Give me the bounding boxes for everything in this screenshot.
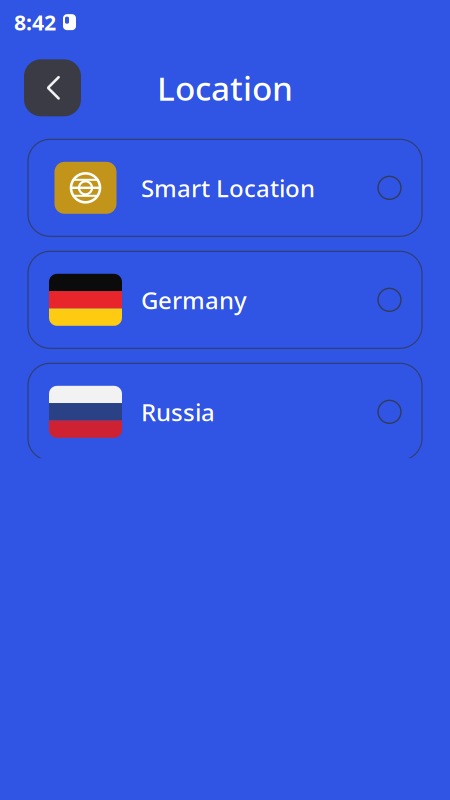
staticText: Russia <box>141 396 215 428</box>
button[interactable]: Back <box>24 59 81 116</box>
staticText: Location <box>157 66 293 110</box>
staticText: 8:42 <box>14 8 56 36</box>
staticText: Smart Location <box>141 172 315 204</box>
button[interactable]: Russia <box>28 363 422 460</box>
button[interactable]: Smart Location <box>28 139 422 236</box>
button[interactable]: Germany <box>28 251 422 348</box>
staticText: Germany <box>141 284 247 316</box>
